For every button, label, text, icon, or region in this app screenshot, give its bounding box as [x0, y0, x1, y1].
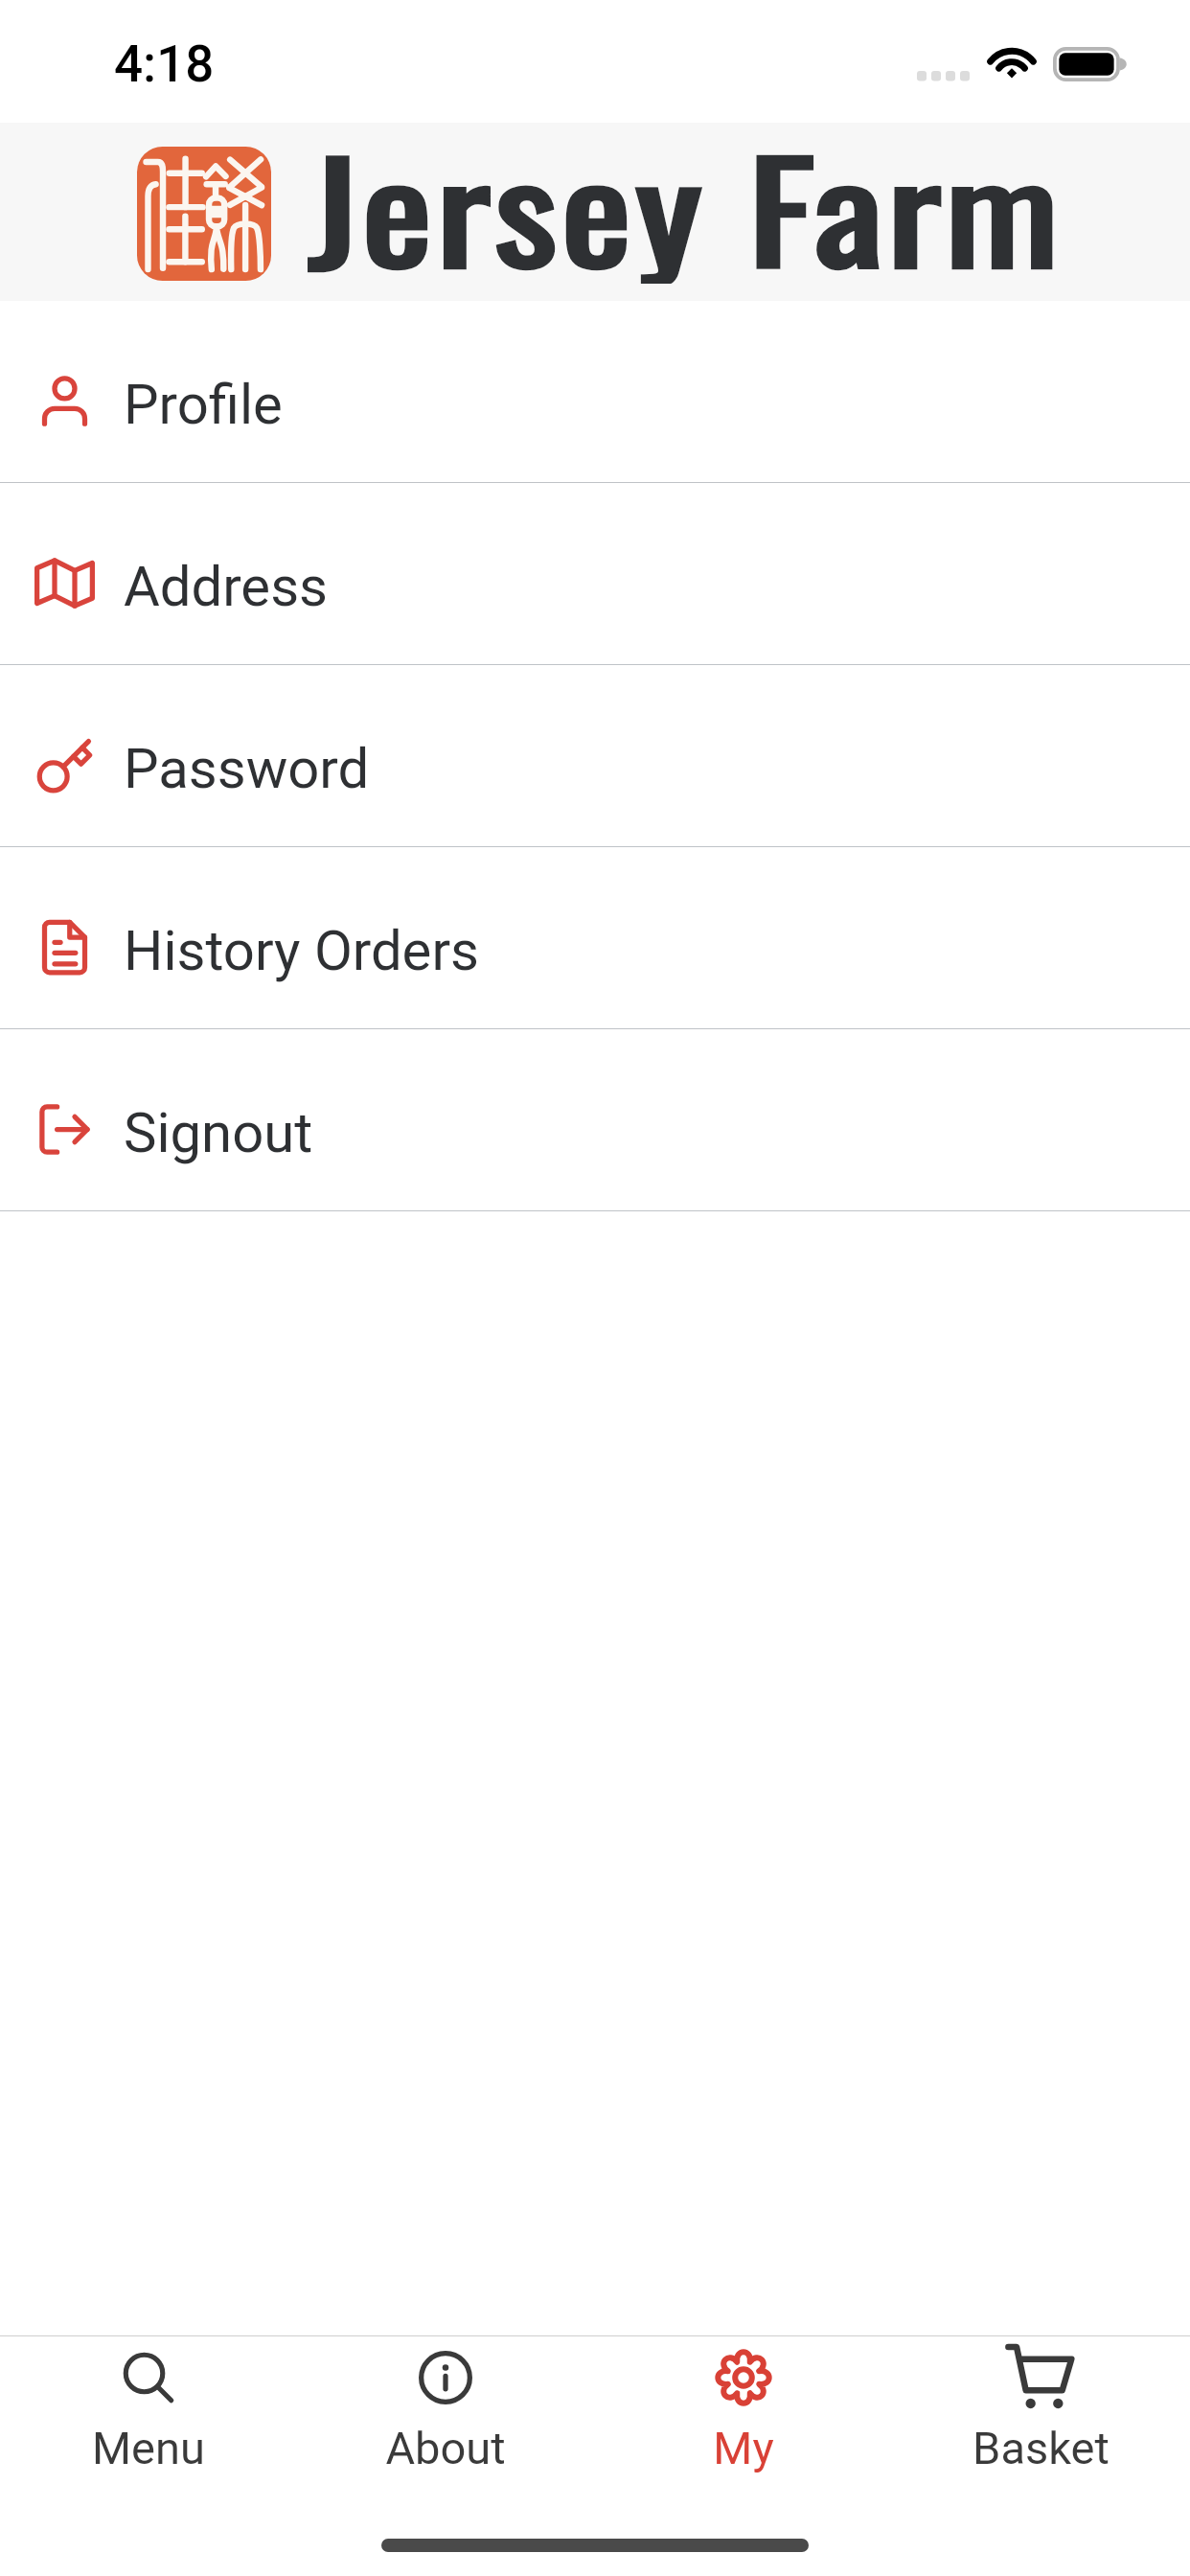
button[interactable]: History Orders: [0, 847, 1190, 1029]
button[interactable]: Menu: [0, 2336, 297, 2507]
staticText: Jersey Farm: [308, 105, 1064, 284]
button[interactable]: Address: [0, 483, 1190, 665]
staticText: 4:18: [114, 34, 215, 94]
staticText: Profile: [124, 372, 283, 437]
staticText: History Orders: [124, 918, 479, 983]
button[interactable]: About: [297, 2336, 594, 2507]
staticText: Signout: [124, 1100, 313, 1165]
staticText: My: [713, 2422, 774, 2474]
button[interactable]: Profile: [0, 301, 1190, 483]
button[interactable]: My: [594, 2336, 892, 2507]
staticText: Basket: [973, 2422, 1110, 2474]
staticText: Menu: [92, 2422, 205, 2474]
button[interactable]: Signout: [0, 1029, 1190, 1211]
button[interactable]: Basket: [892, 2336, 1190, 2507]
button[interactable]: Password: [0, 665, 1190, 847]
staticText: Address: [124, 554, 328, 619]
staticText: Password: [124, 736, 370, 801]
staticText: About: [385, 2422, 506, 2474]
